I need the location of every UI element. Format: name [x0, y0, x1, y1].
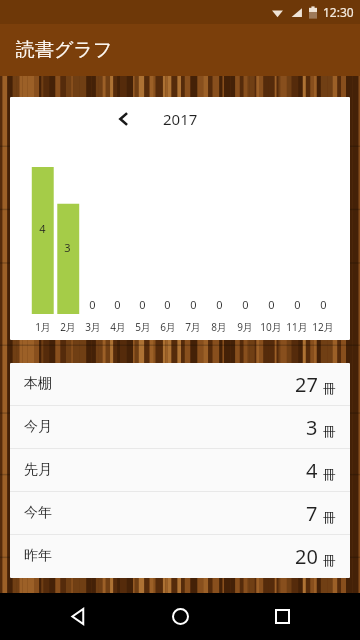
staticText: 0 — [164, 297, 171, 312]
staticText: 0 — [139, 297, 146, 312]
staticText: 7 — [306, 500, 318, 527]
staticText: 6月 — [160, 320, 176, 334]
staticText: 12:30 — [323, 4, 354, 20]
staticText: 11月 — [286, 320, 308, 334]
staticText: 昨年 — [24, 547, 52, 565]
staticText: 0 — [268, 297, 275, 312]
staticText: 0 — [114, 297, 121, 312]
staticText: 9月 — [237, 320, 253, 334]
staticText: 先月 — [24, 461, 52, 479]
staticText: 0 — [216, 297, 223, 312]
button[interactable]: 先月 — [10, 449, 350, 491]
staticText: 27 — [295, 371, 318, 398]
staticText: 7月 — [185, 320, 201, 334]
staticText: 冊 — [323, 423, 336, 439]
button[interactable]: 今年 — [10, 492, 350, 534]
button[interactable]: Previous year — [107, 102, 141, 136]
staticText: 冊 — [323, 509, 336, 525]
staticText: 5月 — [135, 320, 151, 334]
staticText: 4月 — [110, 320, 126, 334]
button[interactable]: 今月 — [10, 406, 350, 448]
staticText: 0 — [89, 297, 96, 312]
staticText: 4 — [39, 221, 46, 236]
staticText: 3 — [306, 414, 318, 441]
button[interactable]: Recent apps — [258, 593, 306, 640]
staticText: 2017 — [163, 109, 198, 129]
staticText: 3月 — [85, 320, 101, 334]
staticText: 10月 — [260, 320, 282, 334]
button[interactable]: 昨年 — [10, 535, 350, 577]
button[interactable]: Back — [54, 593, 102, 640]
staticText: 2月 — [60, 320, 76, 334]
staticText: 12月 — [312, 320, 334, 334]
staticText: 8月 — [211, 320, 227, 334]
button[interactable]: 本棚 — [10, 363, 350, 405]
staticText: 20 — [295, 543, 318, 570]
staticText: 本棚 — [24, 375, 52, 393]
staticText: 今月 — [24, 418, 52, 436]
staticText: 3 — [64, 240, 71, 255]
staticText: 0 — [242, 297, 249, 312]
staticText: 0 — [320, 297, 327, 312]
staticText: 0 — [294, 297, 301, 312]
staticText: 今年 — [24, 504, 52, 522]
staticText: 冊 — [323, 552, 336, 568]
staticText: 0 — [190, 297, 197, 312]
staticText: 冊 — [323, 380, 336, 396]
staticText: 読書グラフ — [16, 38, 113, 62]
staticText: 4 — [306, 457, 318, 484]
button[interactable]: Home — [156, 593, 204, 640]
staticText: 冊 — [323, 466, 336, 482]
staticText: 1月 — [35, 320, 51, 334]
